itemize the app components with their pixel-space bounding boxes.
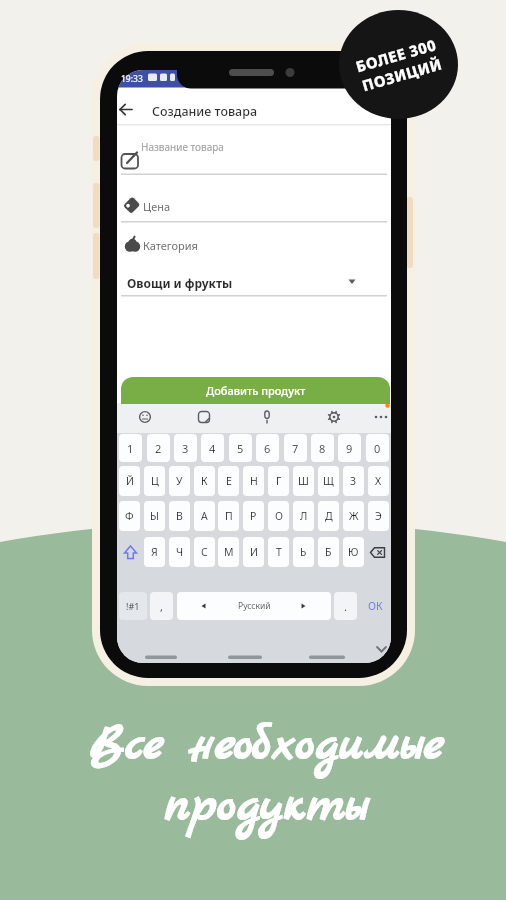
button[interactable] [322,405,346,429]
staticText: Категория [143,238,198,253]
staticText: Создание товара [152,103,258,120]
staticText: Т [276,545,282,559]
staticText: 6 [264,441,271,456]
button[interactable]: 9 [338,434,361,462]
staticText: Название товара [141,140,224,154]
button[interactable]: Русский [177,592,331,620]
button[interactable]: Э [368,501,389,531]
button[interactable] [117,132,391,175]
staticText: К [201,474,208,488]
button[interactable]: 8 [311,434,334,462]
staticText: С [201,545,208,559]
staticText: Я [151,545,158,559]
button[interactable]: 4 [201,434,224,462]
button[interactable]: Ф [119,501,140,531]
button[interactable]: Б [318,537,339,567]
button[interactable] [117,262,391,296]
button[interactable]: 7 [284,434,307,462]
button[interactable]: Р [243,501,264,531]
button[interactable]: Ш [293,466,314,496]
button[interactable]: , [150,592,173,620]
button[interactable]: У [169,466,190,496]
staticText: ПОЗИЦИЙ [360,53,444,95]
button[interactable]: 3 [174,434,197,462]
button[interactable]: Ю [343,537,364,567]
staticText: Все необходимые [14,713,506,778]
staticText: 1 [127,441,134,456]
staticText: Все необходимые [14,713,506,778]
button[interactable]: И [243,537,264,567]
button[interactable]: Ы [144,501,165,531]
button[interactable]: 0 [366,434,389,462]
staticText: БОЛЕЕ 300 [353,34,438,76]
button[interactable] [255,405,279,429]
button[interactable]: !#1 [119,592,147,620]
staticText: А [201,509,208,523]
button[interactable] [366,537,391,567]
button[interactable]: 1 [119,434,142,462]
button[interactable] [117,537,142,567]
staticText: 5 [237,441,244,456]
staticText: У [176,474,183,488]
button[interactable]: 2 [147,434,170,462]
staticText: Добавить продукт [206,383,306,398]
staticText: Ч [176,545,184,559]
button[interactable]: А [194,501,215,531]
staticText: Ь [300,545,307,559]
button[interactable]: Ч [169,537,190,567]
staticText: Й [126,474,134,488]
staticText: Ж [349,509,359,523]
staticText: 8 [319,441,326,456]
button[interactable]: О [268,501,289,531]
button[interactable]: ОК [361,592,389,620]
staticText: Ф [125,509,134,523]
button[interactable]: 5 [229,434,252,462]
staticText: Э [375,509,382,523]
button[interactable]: Я [144,537,165,567]
button[interactable] [117,95,147,125]
button[interactable]: Й [119,466,140,496]
button[interactable]: . [334,592,357,620]
button[interactable]: Добавить продукт [121,377,390,404]
button[interactable]: П [218,501,239,531]
button[interactable]: Ц [144,466,165,496]
button[interactable] [192,405,216,429]
button[interactable]: М [218,537,239,567]
button[interactable]: Е [218,466,239,496]
button[interactable]: Л [293,501,314,531]
staticText: П [225,509,233,523]
staticText: продукты [14,774,506,839]
button[interactable]: Ь [293,537,314,567]
button[interactable]: Г [268,466,289,496]
staticText: 3 [182,441,189,456]
staticText: Ю [348,545,359,559]
button[interactable]: Ж [343,501,364,531]
staticText: Ш [298,474,309,488]
button[interactable] [369,405,393,429]
button[interactable]: 6 [256,434,279,462]
button[interactable] [133,405,157,429]
staticText: 4 [209,441,216,456]
staticText: Б [325,545,332,559]
button[interactable]: Д [318,501,339,531]
button[interactable]: Т [268,537,289,567]
button[interactable]: В [169,501,190,531]
staticText: Е [226,474,232,488]
staticText: В [176,509,183,523]
staticText: 2 [155,441,162,456]
button[interactable]: К [194,466,215,496]
staticText: Русский [238,600,271,612]
staticText: !#1 [126,600,140,612]
staticText: 0 [374,441,381,456]
button[interactable]: З [343,466,364,496]
button[interactable]: Н [243,466,264,496]
staticText: , [160,599,163,614]
button[interactable]: Щ [318,466,339,496]
staticText: З [350,474,357,488]
button[interactable]: С [194,537,215,567]
staticText: Ц [151,474,159,488]
staticText: . [344,599,347,614]
button[interactable]: Х [368,466,389,496]
button[interactable] [117,188,391,222]
staticText: М [224,545,234,559]
